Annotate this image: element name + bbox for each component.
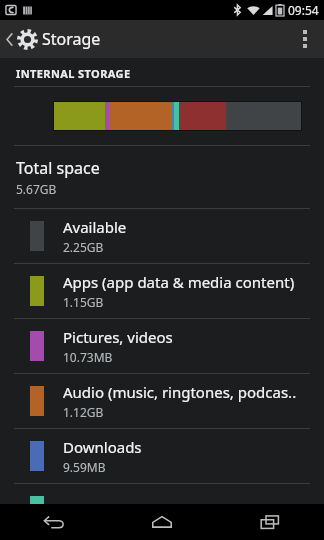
button[interactable]: Available xyxy=(0,209,324,263)
button[interactable]: Total space xyxy=(0,146,324,208)
staticText: 9.59MB xyxy=(63,459,106,475)
button[interactable]: Pictures, videos xyxy=(0,319,324,373)
button[interactable]: More options xyxy=(285,20,324,58)
button[interactable]: Downloads xyxy=(0,429,324,483)
staticText: Cached data xyxy=(63,501,151,521)
button[interactable]: Cached data xyxy=(0,484,324,538)
button[interactable]: Back xyxy=(0,504,108,540)
staticText: 10.73MB xyxy=(63,349,113,365)
staticText: Total space xyxy=(16,157,100,179)
staticText: Pictures, videos xyxy=(63,327,173,347)
button[interactable]: Apps (app data & media content) xyxy=(0,264,324,318)
staticText: 1.12GB xyxy=(63,404,104,420)
staticText: Apps (app data & media content) xyxy=(63,272,295,292)
button[interactable]: Recent apps xyxy=(216,504,324,540)
button[interactable]: Home xyxy=(108,504,216,540)
button[interactable]: Navigate up xyxy=(0,24,45,55)
staticText: Audio (music, ringtones, podcas.. xyxy=(63,382,297,402)
staticText: 09:54 xyxy=(288,2,319,18)
staticText: Storage xyxy=(42,28,101,50)
staticText: Available xyxy=(63,217,127,237)
staticText: 5.67GB xyxy=(16,181,57,197)
staticText: INTERNAL STORAGE xyxy=(16,66,131,81)
button[interactable]: Audio (music, ringtones, podcas.. xyxy=(0,374,324,428)
staticText: Downloads xyxy=(63,437,142,457)
staticText: 1.15GB xyxy=(63,294,104,310)
staticText: 2.25GB xyxy=(63,239,104,255)
